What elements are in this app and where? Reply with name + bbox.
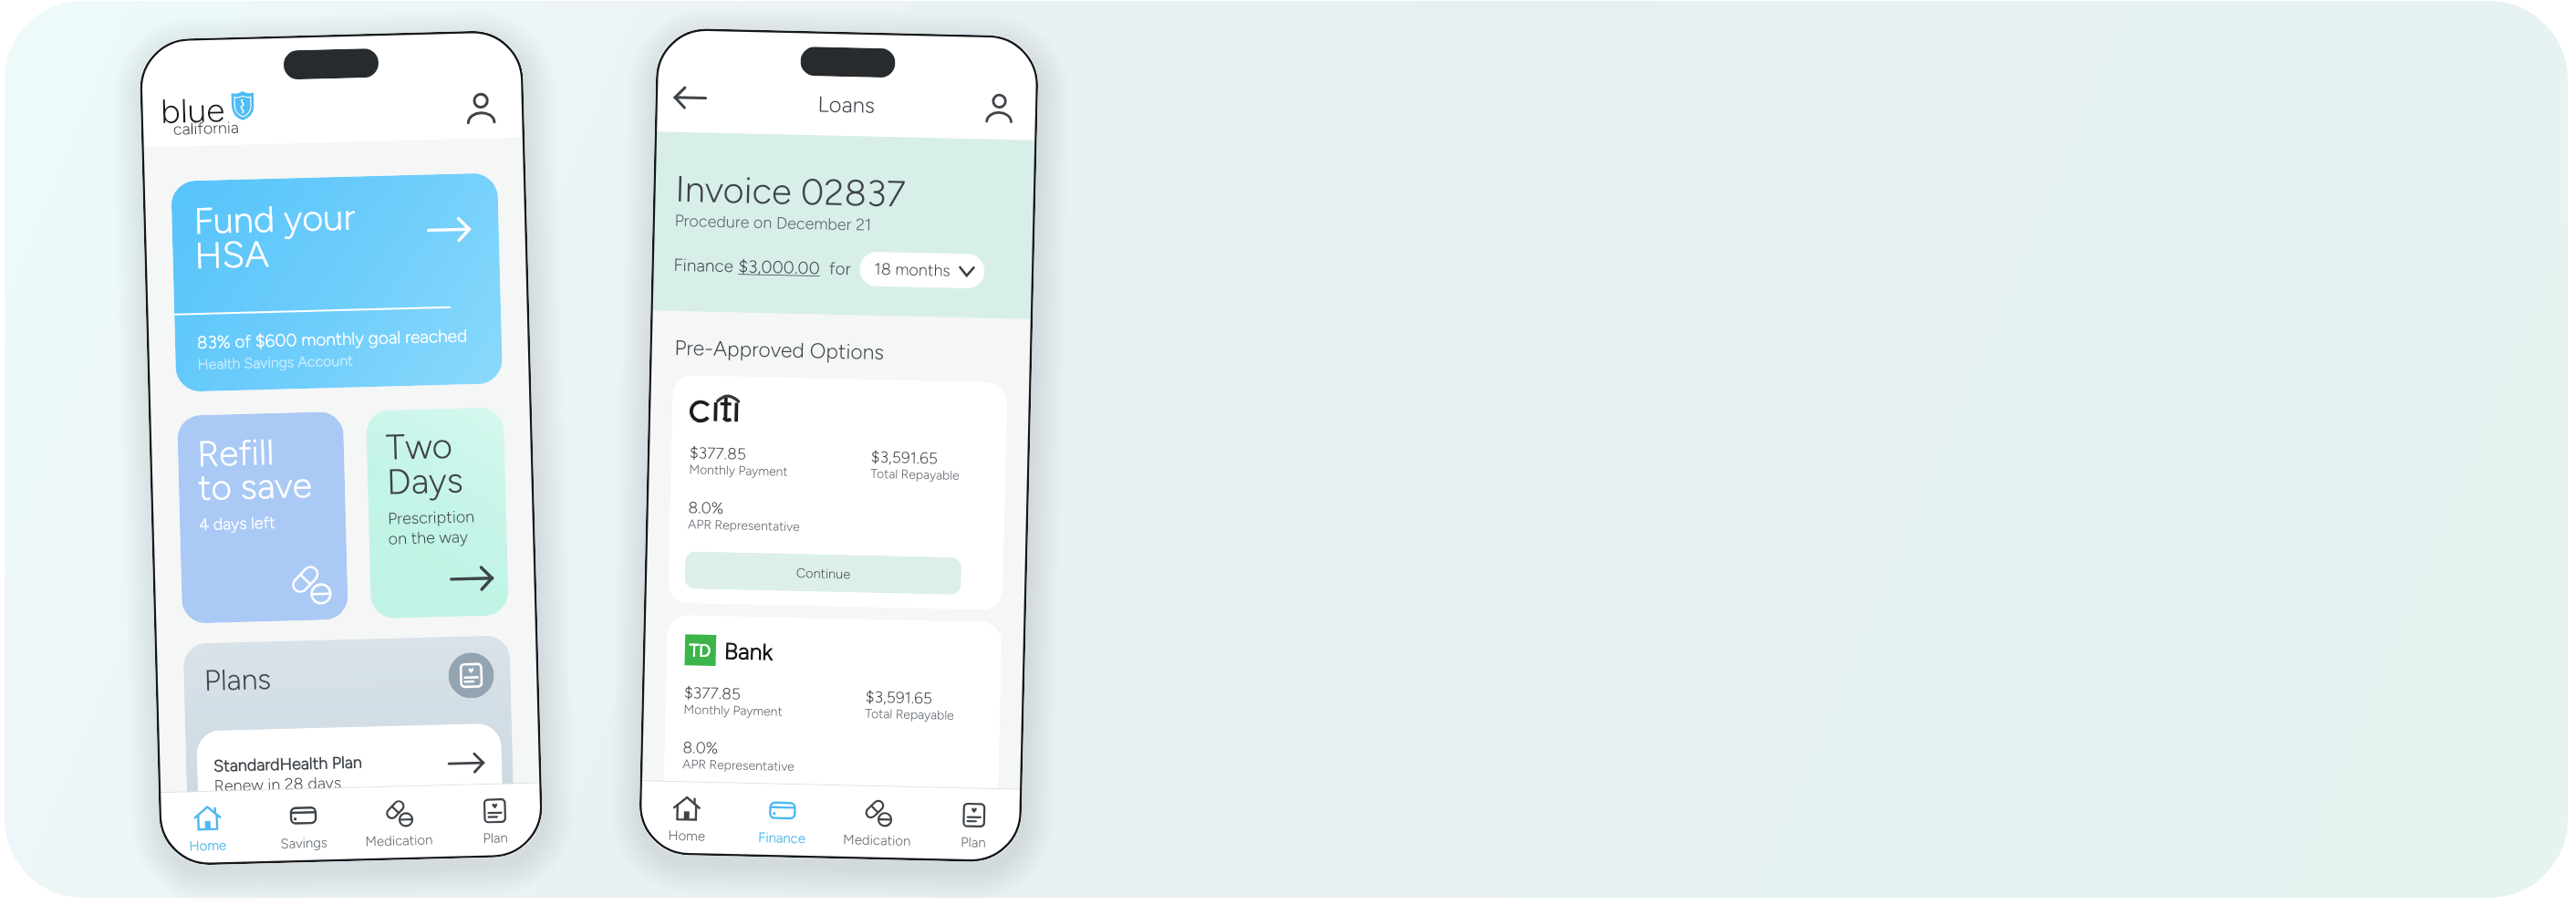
button[interactable]: Refill to save bbox=[177, 411, 348, 624]
staticText: california bbox=[173, 118, 240, 139]
staticText: Renew in 28 days bbox=[214, 773, 342, 796]
button[interactable]: Plans bbox=[183, 635, 514, 817]
staticText: Total Repayable bbox=[870, 466, 960, 484]
staticText: Savings bbox=[280, 834, 328, 852]
staticText: Continue bbox=[791, 805, 846, 821]
staticText: APR Representative bbox=[682, 756, 795, 775]
button[interactable]: Fund your HSA bbox=[171, 173, 503, 392]
button[interactable]: StandardHealth Plan bbox=[196, 723, 503, 817]
button[interactable]: Medication bbox=[350, 786, 448, 861]
staticText: 83% of $600 monthly goal reached bbox=[197, 325, 468, 353]
staticText: Fund your HSA bbox=[193, 195, 357, 277]
button[interactable]: Plan bbox=[925, 788, 1022, 863]
button[interactable]: Plan details bbox=[448, 652, 495, 699]
button[interactable]: Medication bbox=[829, 785, 926, 861]
staticText: $3,000.00 bbox=[738, 256, 821, 279]
staticText: Continue bbox=[796, 565, 851, 581]
staticText: APR Representative bbox=[688, 517, 800, 535]
staticText: Two Days bbox=[385, 424, 464, 503]
staticText: 4 days left bbox=[199, 513, 276, 535]
staticText: Home bbox=[668, 827, 705, 845]
staticText: StandardHealth Plan bbox=[213, 752, 362, 776]
staticText: 18 months bbox=[874, 259, 951, 281]
staticText: TD bbox=[689, 640, 712, 661]
staticText: Medication bbox=[365, 832, 434, 850]
staticText: Prescription on the way bbox=[387, 507, 476, 549]
button[interactable]: Continue bbox=[679, 791, 956, 835]
button[interactable]: Back bbox=[671, 79, 709, 117]
staticText: blue bbox=[160, 90, 225, 130]
staticText: Procedure on December 21 bbox=[674, 211, 872, 235]
staticText: Pre-Approved Options bbox=[674, 335, 885, 365]
button[interactable]: 18 months bbox=[859, 251, 985, 289]
staticText: Plans bbox=[204, 662, 272, 698]
button[interactable]: Finance bbox=[733, 783, 831, 858]
staticText: Finance bbox=[673, 254, 739, 277]
staticText: Invoice 02837 bbox=[675, 167, 907, 216]
staticText: $3,591.65 bbox=[871, 447, 939, 468]
staticText: 8.0% bbox=[682, 737, 719, 757]
staticText: $377.85 bbox=[689, 443, 747, 463]
button[interactable]: $377.85 bbox=[668, 375, 1008, 611]
staticText: $377.85 bbox=[684, 683, 742, 703]
staticText: Finance bbox=[758, 829, 806, 847]
button[interactable]: Home bbox=[159, 791, 256, 866]
button[interactable]: Profile bbox=[984, 94, 1014, 123]
button[interactable]: Plan bbox=[446, 783, 543, 859]
staticText: for bbox=[820, 258, 860, 280]
staticText: Health Savings Account bbox=[197, 352, 354, 373]
staticText: Medication bbox=[843, 831, 912, 849]
staticText: Monthly Payment bbox=[689, 462, 789, 480]
button[interactable]: TD bbox=[662, 615, 1002, 850]
staticText: Refill to save bbox=[197, 430, 313, 509]
button[interactable]: Home bbox=[638, 781, 735, 856]
button[interactable]: Profile bbox=[465, 93, 497, 124]
staticText: $3,591.65 bbox=[865, 687, 933, 707]
staticText: Plan bbox=[483, 830, 509, 847]
staticText: Monthly Payment bbox=[683, 702, 783, 720]
staticText: 8.0% bbox=[688, 497, 724, 517]
button[interactable]: Two Days bbox=[366, 407, 509, 619]
staticText: Loans bbox=[817, 91, 876, 118]
button[interactable]: Continue bbox=[685, 551, 962, 595]
staticText: Home bbox=[189, 837, 227, 854]
staticText: Bank bbox=[724, 637, 774, 665]
staticText: Plan bbox=[961, 834, 986, 851]
button[interactable]: Savings bbox=[254, 788, 352, 864]
staticText: Total Repayable bbox=[865, 706, 955, 723]
